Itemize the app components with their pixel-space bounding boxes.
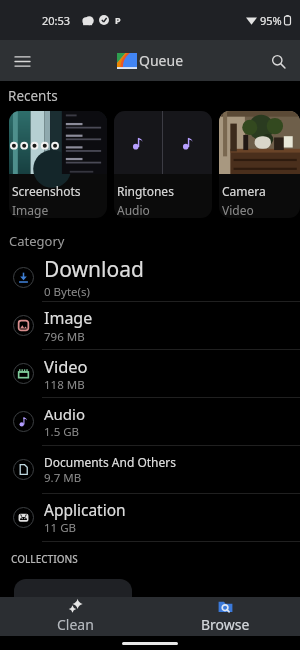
button[interactable]: Ringtones xyxy=(114,111,212,218)
staticText: 20:53 xyxy=(42,13,71,28)
staticText: Application xyxy=(44,499,126,520)
staticText: 0 Byte(s) xyxy=(44,284,90,300)
button[interactable]: Menu xyxy=(6,45,38,77)
staticText: Recents xyxy=(8,87,58,105)
button[interactable] xyxy=(14,579,132,597)
button[interactable]: Video xyxy=(0,350,300,397)
staticText: Category xyxy=(9,232,65,250)
staticText: P xyxy=(115,14,121,26)
staticText: Download xyxy=(44,255,144,284)
button[interactable]: Image xyxy=(0,302,300,349)
staticText: 1.5 GB xyxy=(44,424,80,440)
button[interactable]: Documents And Others xyxy=(0,446,300,493)
staticText: Image xyxy=(44,307,93,329)
button[interactable]: Audio xyxy=(0,398,300,445)
staticText: Documents And Others xyxy=(44,454,176,470)
staticText: Video xyxy=(44,355,88,377)
staticText: 9.7 MB xyxy=(44,470,82,486)
button[interactable]: Application xyxy=(0,494,300,541)
button[interactable]: Download xyxy=(0,254,300,301)
staticText: 11 GB xyxy=(44,520,76,536)
staticText: COLLECTIONS xyxy=(11,552,78,566)
staticText: 95% xyxy=(260,13,282,28)
staticText: Screenshots xyxy=(12,183,81,199)
staticText: Queue xyxy=(139,51,184,70)
button[interactable]: Browse xyxy=(150,597,300,636)
staticText: 796 MB xyxy=(44,329,85,345)
staticText: Camera xyxy=(222,183,266,199)
staticText: Image xyxy=(12,202,49,218)
staticText: Clean xyxy=(57,615,94,634)
staticText: Ringtones xyxy=(117,183,174,199)
button[interactable]: Screenshots xyxy=(9,111,107,218)
staticText: Audio xyxy=(117,202,150,218)
button[interactable]: Camera xyxy=(219,111,300,218)
button[interactable]: Search xyxy=(262,45,294,77)
button[interactable]: Clean xyxy=(0,597,150,636)
staticText: 118 MB xyxy=(44,377,85,393)
staticText: Video xyxy=(222,202,254,218)
staticText: Browse xyxy=(201,615,250,634)
staticText: Audio xyxy=(44,404,86,424)
